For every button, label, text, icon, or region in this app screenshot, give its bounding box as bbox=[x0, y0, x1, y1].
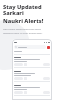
button[interactable] bbox=[43, 77, 50, 80]
button[interactable]: Bookmark bbox=[14, 55, 50, 69]
staticText: delivered right to your phone daily. bbox=[3, 31, 43, 34]
button[interactable] bbox=[14, 63, 23, 66]
button[interactable]: Search bbox=[14, 45, 46, 49]
button[interactable]: Notifications bbox=[47, 46, 50, 49]
staticText: Get instant government job alerts bbox=[3, 27, 41, 30]
button[interactable]: Bookmark bbox=[14, 69, 50, 83]
staticText: Naukri Alerts! bbox=[3, 17, 44, 25]
button[interactable] bbox=[14, 91, 23, 94]
button[interactable]: Bookmark bbox=[14, 97, 50, 100]
button[interactable] bbox=[43, 91, 50, 94]
button[interactable]: Bookmark bbox=[14, 83, 50, 97]
staticText: Stay Updated Sarkari bbox=[3, 3, 62, 17]
button[interactable] bbox=[14, 77, 23, 80]
button[interactable] bbox=[43, 63, 50, 66]
